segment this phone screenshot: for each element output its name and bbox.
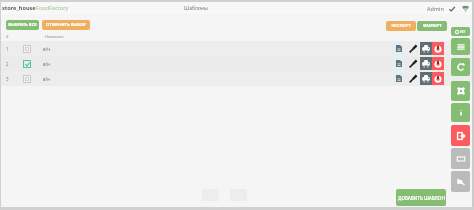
button[interactable]: ОТМЕНИТЬ ВЫБОР <box>42 20 90 30</box>
button[interactable]: Copy <box>393 57 405 70</box>
staticText: ОТМЕНИТЬ ВЫБОР <box>46 22 86 28</box>
staticText: в/н <box>43 76 50 82</box>
staticText: ДОБАВИТЬ ШАБЛОН <box>398 195 445 201</box>
button[interactable]: Delete <box>432 42 444 55</box>
button[interactable]: Edit <box>409 72 417 85</box>
button[interactable]: ВЫБРАТЬ ВСЕ <box>6 20 39 30</box>
button[interactable]: 3 <box>1 71 474 86</box>
staticText: ИМПОРТ <box>423 23 442 29</box>
staticText: FoodFactory <box>36 4 69 12</box>
button[interactable]: ЭКСПОРТ <box>386 21 416 31</box>
staticText: в/н <box>43 61 50 67</box>
button[interactable]: Delete <box>432 57 444 70</box>
button[interactable]: Refresh <box>451 58 470 76</box>
staticText: в/н <box>43 46 50 52</box>
button[interactable]: ИМПОРТ <box>417 21 447 31</box>
staticText: 2 <box>6 61 9 67</box>
button[interactable]: Delete <box>432 72 444 85</box>
button[interactable]: Print <box>420 72 432 85</box>
staticText: 1 <box>6 46 9 52</box>
button[interactable]: Copy <box>393 72 405 85</box>
button[interactable]: Edit <box>409 57 417 70</box>
button[interactable]: Print <box>420 57 432 70</box>
staticText: store_house <box>2 4 36 12</box>
button[interactable]: Select row 1 <box>23 45 31 53</box>
staticText: ЭКСПОРТ <box>391 23 411 29</box>
button[interactable]: Select row 3 <box>23 75 31 83</box>
button[interactable]: Video off <box>451 171 470 192</box>
button[interactable]: Print <box>420 42 432 55</box>
button[interactable]: Edit <box>409 42 417 55</box>
staticText: Admin <box>427 5 444 12</box>
staticText: RU <box>460 29 466 34</box>
button[interactable]: 1 <box>1 41 474 56</box>
staticText: Название <box>45 34 64 39</box>
button[interactable]: Keyboard <box>451 148 470 169</box>
button[interactable]: 2 <box>1 56 474 71</box>
button[interactable]: Menu <box>451 38 470 55</box>
button[interactable]: Info <box>451 103 470 122</box>
staticText: # <box>6 34 9 39</box>
button[interactable]: Settings <box>451 81 470 101</box>
button[interactable]: Language RU <box>451 27 470 36</box>
button[interactable]: Copy <box>393 42 405 55</box>
staticText: 3 <box>6 76 9 82</box>
staticText: Шаблоны <box>184 5 208 12</box>
button[interactable]: Select row 2 <box>23 60 31 68</box>
staticText: ВЫБРАТЬ ВСЕ <box>8 22 37 28</box>
button[interactable]: ДОБАВИТЬ ШАБЛОН <box>396 189 446 206</box>
button[interactable]: Logout <box>451 125 470 146</box>
